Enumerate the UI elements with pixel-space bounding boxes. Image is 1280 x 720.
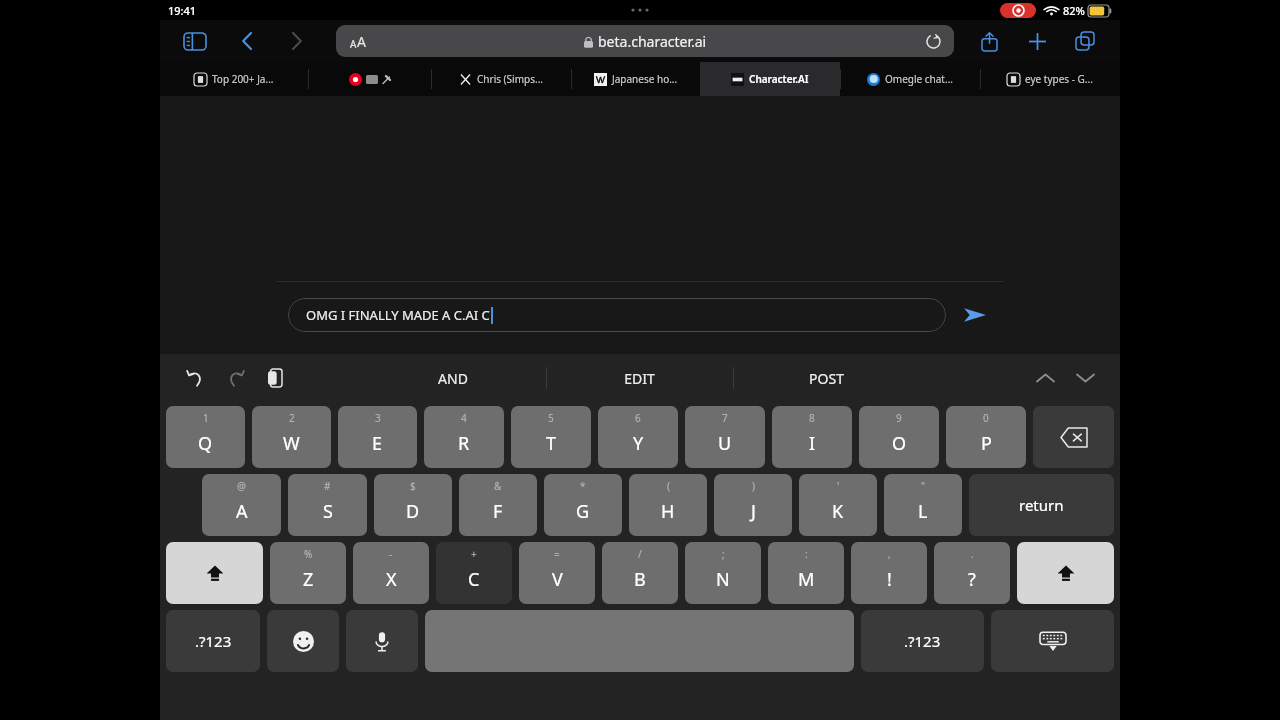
button[interactable]: ; — [685, 542, 761, 604]
button[interactable]: Redo — [220, 363, 250, 393]
staticText: .?123 — [904, 631, 941, 651]
staticText: ( — [667, 479, 670, 493]
staticText: L — [918, 499, 928, 524]
staticText: T — [546, 431, 557, 456]
staticText: eye types - G... — [1025, 72, 1093, 86]
button[interactable]: % — [270, 542, 346, 604]
button[interactable]: Back — [230, 24, 264, 58]
button[interactable]: # — [288, 474, 367, 536]
button[interactable]: . — [934, 542, 1010, 604]
button[interactable]: Forward — [280, 24, 314, 58]
staticText: F — [493, 499, 503, 524]
button[interactable]: Tabs — [1068, 24, 1102, 58]
button[interactable]: POST — [733, 354, 920, 402]
button[interactable]: OMG I FINALLY MADE A C.AI C — [288, 298, 946, 332]
button[interactable]: @ — [202, 474, 281, 536]
button[interactable]: .?123 — [166, 610, 260, 672]
staticText: Chris (Simps... — [477, 72, 543, 86]
staticText: 5 — [548, 411, 554, 425]
button[interactable]: Previous field — [1030, 363, 1060, 393]
staticText: EDIT — [624, 369, 655, 388]
staticText: # — [324, 479, 331, 493]
button[interactable]: Emoji — [267, 610, 339, 672]
button[interactable]: - — [353, 542, 429, 604]
staticText: 7 — [722, 411, 728, 425]
staticText: beta.character.ai — [598, 32, 707, 51]
button[interactable]: EDIT — [546, 354, 733, 402]
staticText: K — [832, 499, 844, 524]
staticText: G — [576, 499, 590, 524]
button[interactable]: Character.AI — [700, 62, 840, 96]
staticText: + — [471, 547, 477, 561]
button[interactable]: $ — [374, 474, 452, 536]
button[interactable]: Hide keyboard — [991, 610, 1114, 672]
button[interactable]: = — [519, 542, 595, 604]
button[interactable]: ) — [714, 474, 792, 536]
staticText: E — [372, 431, 383, 456]
staticText: N — [716, 567, 730, 592]
button[interactable]: * — [544, 474, 622, 536]
button[interactable]: ' — [799, 474, 877, 536]
button[interactable]: " — [884, 474, 962, 536]
button[interactable]: , — [851, 542, 927, 604]
button[interactable]: Send — [958, 298, 992, 332]
button[interactable]: Sidebar — [178, 24, 212, 58]
staticText: % — [304, 547, 313, 561]
staticText: AND — [438, 369, 468, 388]
button[interactable]: A — [336, 25, 954, 57]
button[interactable]: Omegle chat... — [840, 62, 980, 96]
button[interactable]: 6 — [598, 406, 678, 468]
button[interactable]: 7 — [685, 406, 765, 468]
staticText: . — [971, 547, 974, 561]
button[interactable]: Space — [425, 610, 854, 672]
button[interactable]: Paste — [260, 363, 290, 393]
staticText: , — [888, 547, 891, 561]
button[interactable]: 8 — [772, 406, 852, 468]
button[interactable]: Reload — [922, 30, 944, 52]
button[interactable]: : — [768, 542, 844, 604]
staticText: & — [494, 479, 502, 493]
button[interactable]: return — [969, 474, 1114, 536]
staticText: Y — [633, 431, 644, 456]
button[interactable]: Next field — [1070, 363, 1100, 393]
button[interactable]: 2 — [252, 406, 331, 468]
button[interactable]: Chris (Simps... — [431, 62, 571, 96]
button[interactable]: 5 — [511, 406, 591, 468]
staticText: POST — [809, 369, 844, 388]
button[interactable]: Backspace — [1033, 406, 1114, 468]
button[interactable]: 9 — [859, 406, 939, 468]
button[interactable]: 4 — [424, 406, 504, 468]
staticText: J — [751, 499, 756, 524]
staticText: C — [468, 567, 480, 592]
button[interactable]: Shift — [1017, 542, 1114, 604]
staticText: 9 — [896, 411, 902, 425]
button[interactable]: & — [459, 474, 537, 536]
button[interactable]: Dictation — [346, 610, 418, 672]
button[interactable] — [308, 62, 431, 96]
staticText: Top 200+ Ja... — [212, 72, 274, 86]
staticText: 19:41 — [168, 3, 197, 18]
button[interactable]: Top 200+ Ja... — [160, 62, 308, 96]
staticText: 1 — [203, 411, 209, 425]
button[interactable]: Share — [972, 24, 1006, 58]
staticText: 3 — [375, 411, 381, 425]
button[interactable]: 1 — [166, 406, 245, 468]
staticText: @ — [237, 479, 246, 493]
staticText: W — [283, 431, 300, 456]
button[interactable]: Shift — [166, 542, 263, 604]
button[interactable]: 0 — [946, 406, 1026, 468]
button[interactable]: eye types - G... — [980, 62, 1120, 96]
button[interactable]: New tab — [1020, 24, 1054, 58]
button[interactable]: 3 — [338, 406, 417, 468]
button[interactable]: ( — [629, 474, 707, 536]
staticText: ; — [722, 547, 725, 561]
staticText: - — [389, 547, 393, 561]
button[interactable]: + — [436, 542, 512, 604]
button[interactable]: .?123 — [861, 610, 984, 672]
button[interactable]: AND — [360, 354, 546, 402]
button[interactable]: Japanese ho... — [571, 62, 700, 96]
button[interactable]: Undo — [180, 363, 210, 393]
staticText: V — [552, 567, 563, 592]
staticText: * — [580, 479, 586, 493]
button[interactable]: / — [602, 542, 678, 604]
